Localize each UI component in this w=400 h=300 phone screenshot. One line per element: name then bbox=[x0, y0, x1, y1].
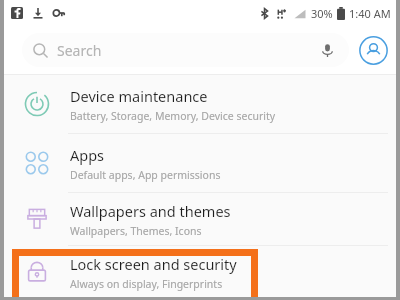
button[interactable]: Wallpapers and themes bbox=[0, 193, 400, 245]
staticText: Wallpapers, Themes, Icons bbox=[70, 224, 202, 238]
staticText: Device maintenance bbox=[70, 86, 208, 106]
button[interactable]: Lock screen and security bbox=[0, 246, 400, 298]
staticText: Apps bbox=[70, 145, 105, 165]
button[interactable]: Search bbox=[22, 33, 349, 67]
button[interactable]: Account bbox=[358, 35, 388, 65]
staticText: Battery, Storage, Memory, Device securit… bbox=[70, 109, 276, 123]
staticText: 1:40 AM bbox=[349, 6, 391, 21]
staticText: 30% bbox=[311, 6, 333, 21]
button[interactable]: Voice search bbox=[316, 39, 338, 61]
staticText: Always on display, Fingerprints bbox=[70, 277, 223, 291]
staticText: Lock screen and security bbox=[70, 254, 237, 274]
button[interactable]: Device maintenance bbox=[0, 75, 400, 133]
button[interactable]: Apps bbox=[0, 134, 400, 192]
staticText: Wallpapers and themes bbox=[70, 201, 231, 221]
staticText: Default apps, App permissions bbox=[70, 168, 221, 182]
other: Highlight Lock screen and security bbox=[12, 249, 258, 300]
staticText: Search bbox=[57, 41, 316, 60]
